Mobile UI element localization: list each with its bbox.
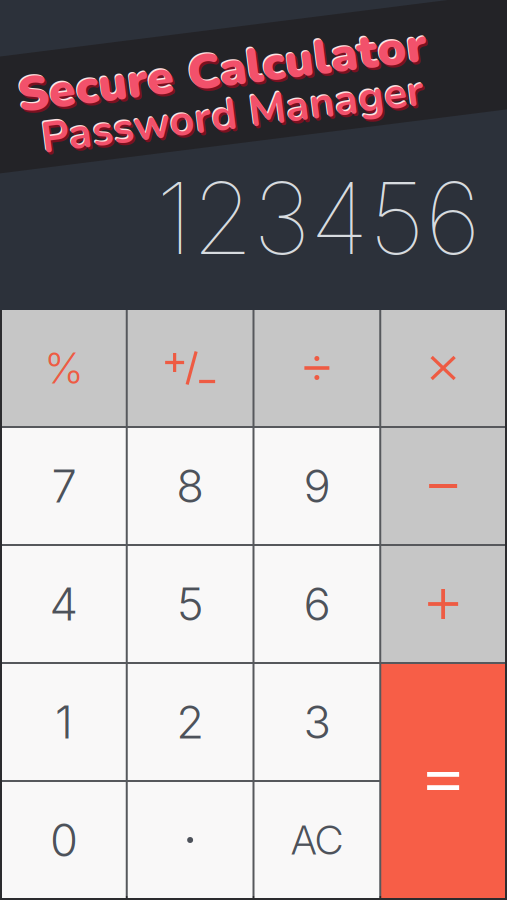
staticText: 2 bbox=[176, 695, 204, 749]
button[interactable]: Plus bbox=[381, 546, 505, 662]
staticText: Password Manager bbox=[36, 84, 421, 143]
staticText: Password Manager bbox=[38, 88, 423, 147]
staticText: AC bbox=[291, 816, 343, 864]
button[interactable]: 7 bbox=[2, 428, 126, 544]
staticText: Password Manager bbox=[37, 86, 422, 145]
button[interactable]: 8 bbox=[128, 428, 253, 544]
button[interactable]: 3 bbox=[254, 664, 379, 780]
button[interactable]: 6 bbox=[254, 546, 379, 662]
button[interactable]: Divide bbox=[254, 310, 379, 426]
staticText: Secure Calculator bbox=[20, 40, 432, 105]
staticText: 5 bbox=[177, 577, 204, 631]
staticText: 7 bbox=[51, 459, 76, 513]
staticText: 123456 bbox=[156, 158, 481, 278]
staticText: 3 bbox=[303, 695, 330, 749]
button[interactable]: AC bbox=[254, 782, 379, 898]
button[interactable]: 2 bbox=[128, 664, 253, 780]
button[interactable]: 5 bbox=[128, 546, 253, 662]
button[interactable]: Plus minus bbox=[128, 310, 253, 426]
staticText: 0 bbox=[50, 813, 78, 867]
button[interactable]: 1 bbox=[2, 664, 126, 780]
button[interactable]: 0 bbox=[2, 782, 126, 898]
button[interactable]: Percent bbox=[2, 310, 126, 426]
button[interactable]: Multiply bbox=[381, 310, 505, 426]
staticText: 4 bbox=[49, 577, 78, 631]
staticText: Secure Calculator bbox=[18, 36, 430, 101]
staticText: % bbox=[44, 342, 84, 394]
staticText: 1 bbox=[55, 695, 73, 749]
button[interactable]: Decimal point bbox=[128, 782, 253, 898]
staticText: 9 bbox=[303, 459, 330, 513]
staticText: 8 bbox=[176, 459, 204, 513]
button[interactable]: Equals bbox=[381, 664, 505, 898]
staticText: Secure Calculator bbox=[19, 37, 431, 103]
button[interactable]: Minus bbox=[381, 428, 505, 544]
button[interactable]: 4 bbox=[2, 546, 126, 662]
staticText: 6 bbox=[303, 577, 330, 631]
button[interactable]: 9 bbox=[254, 428, 379, 544]
